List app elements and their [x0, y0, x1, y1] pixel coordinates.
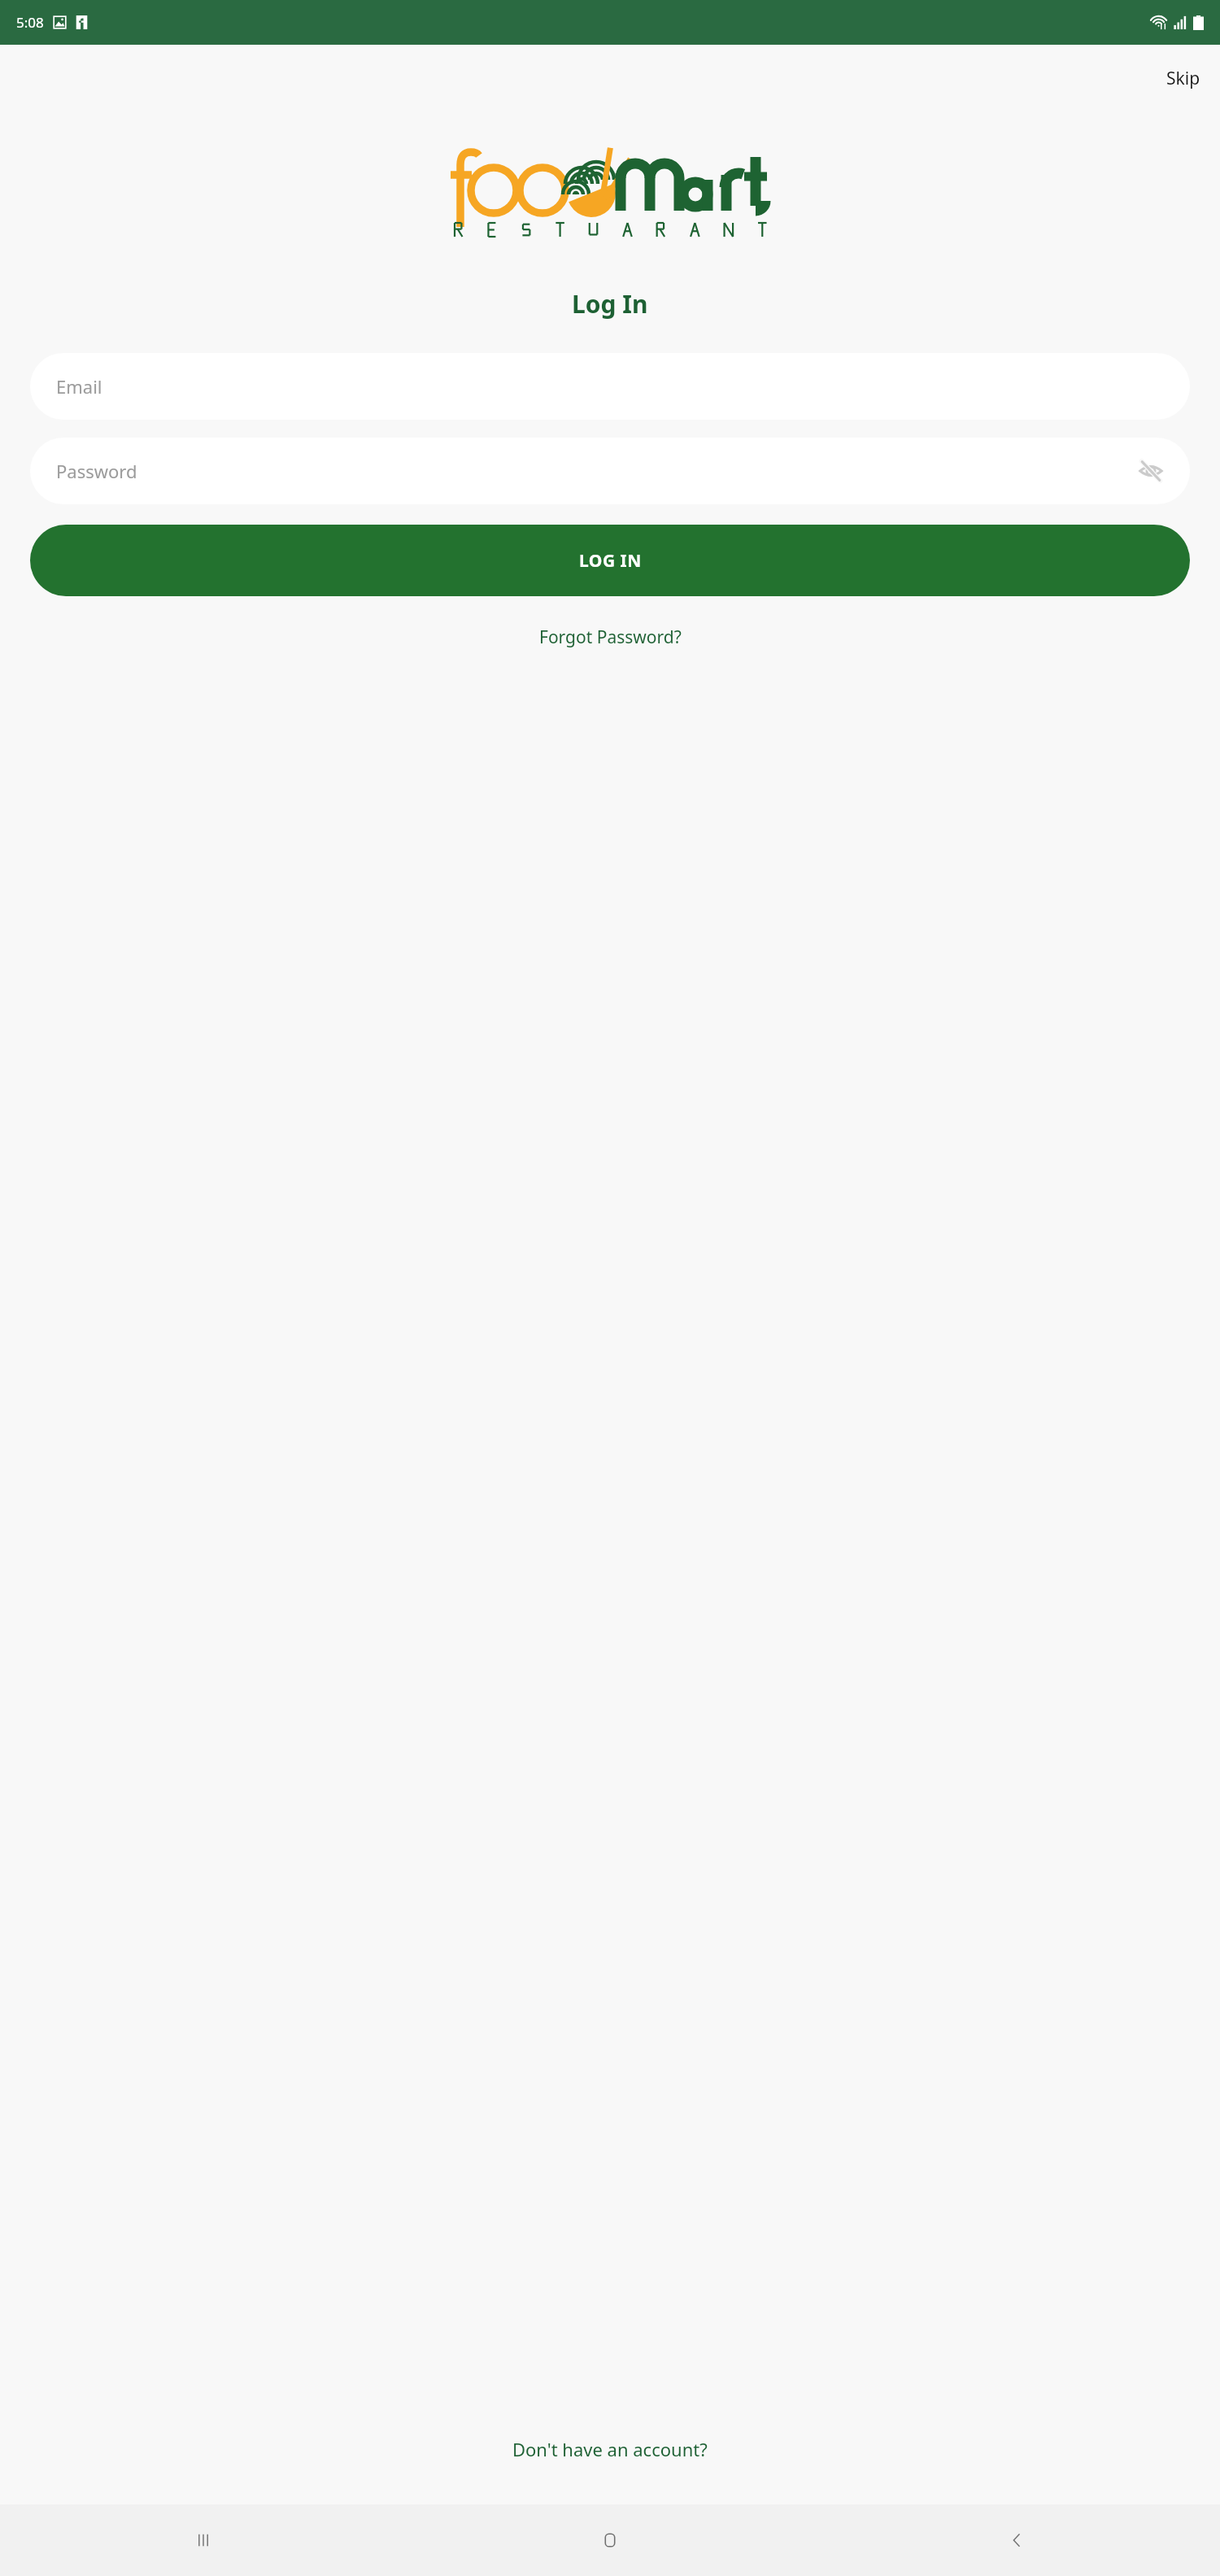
button[interactable]: Show password — [1133, 453, 1169, 489]
staticText: 5:08 — [16, 13, 44, 32]
button[interactable]: Back — [813, 2504, 1220, 2576]
staticText: Email — [56, 374, 102, 399]
button[interactable]: Recents — [0, 2504, 407, 2576]
staticText: Password — [56, 459, 137, 483]
button[interactable]: LOG IN — [30, 525, 1190, 596]
button[interactable]: Skip — [1157, 60, 1210, 97]
button[interactable]: Forgot Password? — [529, 619, 691, 656]
button[interactable]: Home — [407, 2504, 813, 2576]
staticText: Skip — [1166, 67, 1200, 90]
button[interactable]: Don't have an account? — [503, 2430, 717, 2468]
staticText: Log In — [572, 287, 648, 320]
button[interactable]: Password — [30, 438, 1190, 504]
staticText: Don't have an account? — [512, 2437, 708, 2461]
staticText: LOG IN — [579, 549, 642, 573]
staticText: Forgot Password? — [539, 625, 682, 649]
button[interactable]: Email — [30, 353, 1190, 420]
